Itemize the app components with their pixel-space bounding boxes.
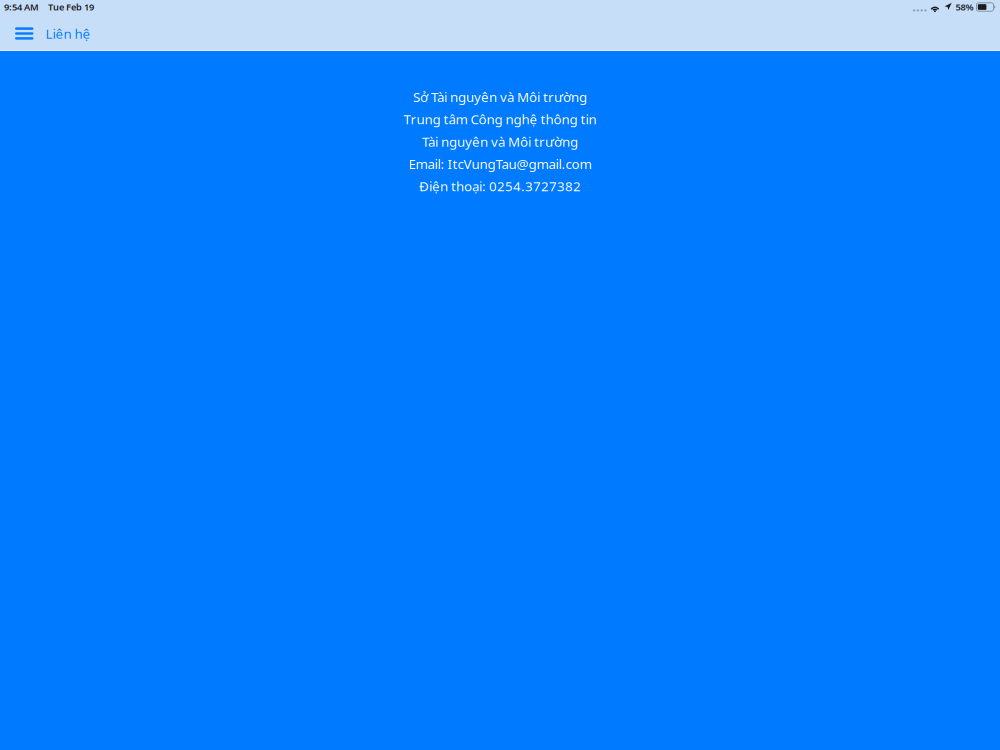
staticText: Tài nguyên và Môi trường [422, 133, 578, 150]
staticText: Tue Feb 19 [48, 1, 94, 13]
button[interactable]: Menu [9, 17, 39, 50]
staticText: Sở Tài nguyên và Môi trường [413, 88, 587, 106]
staticText: Email: ItcVungTau@gmail.com [408, 155, 591, 173]
button[interactable]: Liên hệ [39, 17, 98, 50]
staticText: 9:54 AM [4, 1, 39, 13]
staticText: Liên hệ [45, 25, 90, 42]
staticText: Điện thoại: 0254.3727382 [419, 177, 581, 195]
staticText: 58% [955, 1, 973, 13]
staticText: Trung tâm Công nghệ thông tin [403, 110, 596, 128]
